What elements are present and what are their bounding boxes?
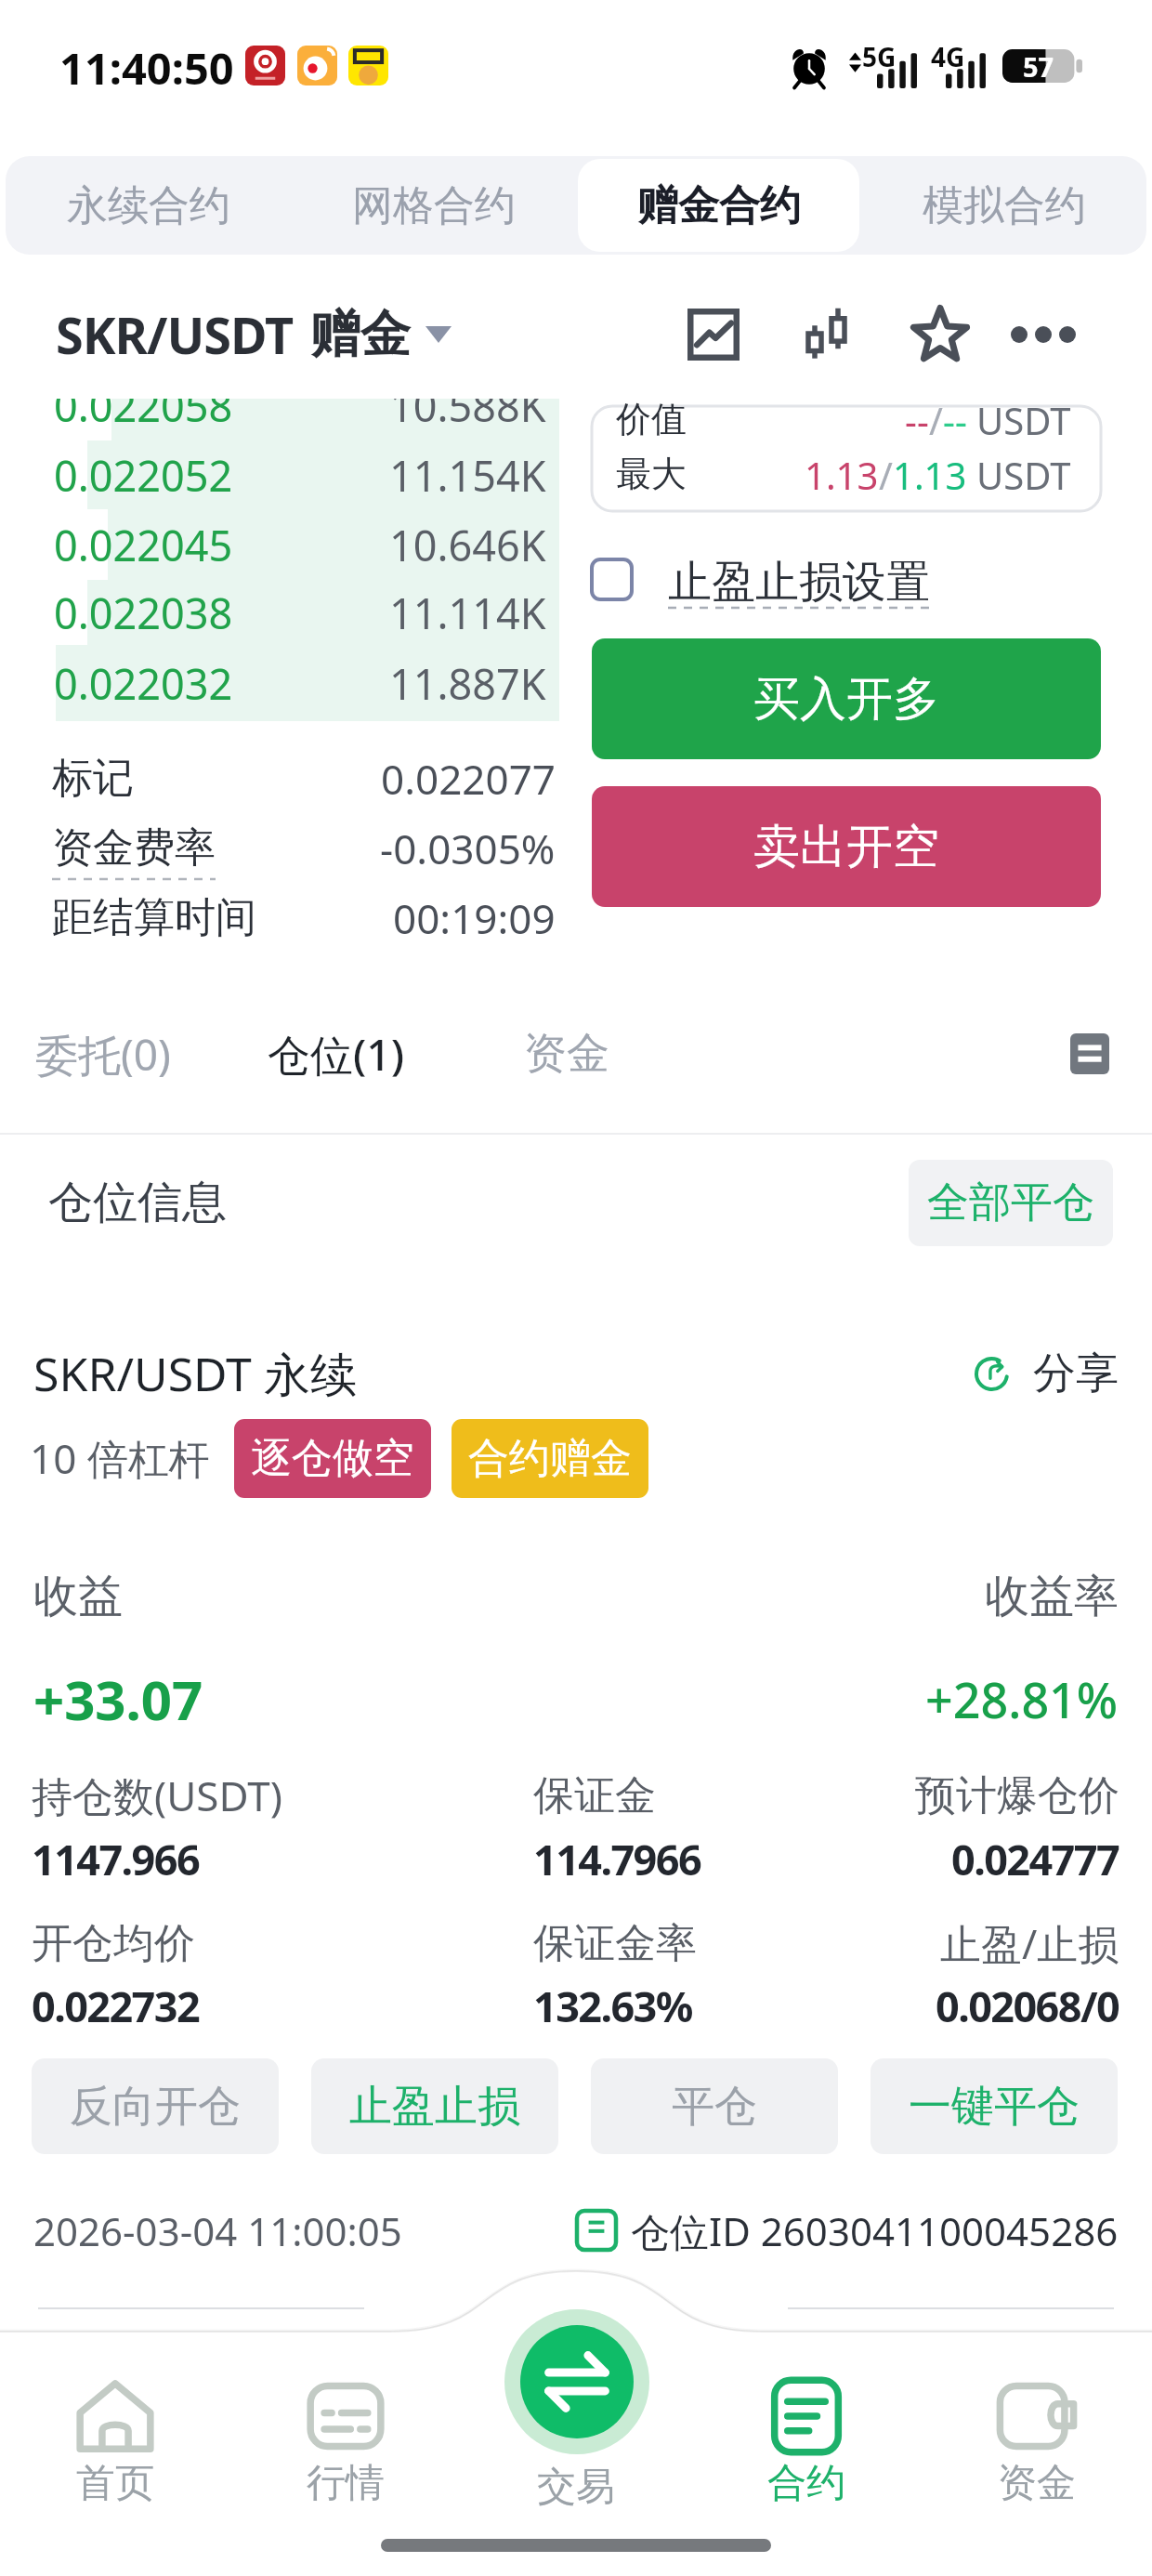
staticText: +33.07 [33, 1663, 203, 1736]
button[interactable]: 0.022038 [0, 580, 559, 645]
staticText: 10.588K [389, 399, 546, 434]
staticText: 10.646K [389, 517, 546, 573]
staticText: 资金 [998, 2459, 1076, 2508]
staticText: 5G [862, 39, 897, 74]
staticText: 最大 [616, 452, 687, 496]
button[interactable]: Trade [504, 2309, 649, 2454]
button[interactable]: 分享 [974, 1347, 1119, 1400]
button[interactable]: 止盈止损 [311, 2058, 558, 2154]
button[interactable]: 合约 [691, 2342, 922, 2528]
staticText: 分享 [1033, 1347, 1119, 1400]
button[interactable]: 委托(0) [35, 1025, 171, 1084]
staticText: 首页 [76, 2459, 154, 2508]
button[interactable]: Line chart [671, 292, 756, 377]
staticText: 一键平仓 [909, 2080, 1080, 2134]
button[interactable]: Trade [461, 2309, 691, 2523]
staticText: 标记 [52, 753, 134, 804]
button[interactable]: 资金 [524, 1027, 609, 1081]
staticText: 仓位信息 [48, 1175, 227, 1230]
staticText: 0.024777 [951, 1831, 1119, 1887]
staticText: 行情 [307, 2459, 385, 2508]
button[interactable]: SKR/USDT [56, 300, 452, 369]
staticText: 仓位ID 2603041100045286 [631, 2204, 1119, 2257]
button[interactable]: 止盈止损设置 [592, 555, 930, 603]
staticText: 开仓均价 [32, 1918, 195, 1969]
button[interactable]: 买入开多 [592, 638, 1101, 759]
staticText: 132.63% [533, 1978, 692, 2034]
button[interactable]: Add to favorites [897, 291, 983, 376]
staticText: 1147.966 [32, 1831, 200, 1887]
staticText: 1.13 [805, 450, 879, 498]
staticText: 0.022058 [54, 399, 233, 434]
button[interactable]: 资金 [922, 2342, 1152, 2528]
staticText: 平仓 [672, 2080, 757, 2134]
button[interactable]: 平仓 [591, 2058, 838, 2154]
staticText: 资金费率 [52, 822, 216, 874]
staticText: 0.022052 [54, 447, 233, 504]
staticText: -- [943, 395, 967, 443]
button[interactable]: 网格合约 [293, 159, 574, 252]
button[interactable]: 0.022032 [0, 645, 559, 721]
button[interactable]: More options [1001, 292, 1086, 377]
staticText: 11.114K [389, 585, 546, 641]
button[interactable]: 模拟合约 [863, 159, 1145, 252]
staticText: 价值 [616, 397, 687, 441]
button[interactable]: 一键平仓 [871, 2058, 1118, 2154]
button[interactable]: 赠金合约 [578, 159, 859, 252]
staticText: SKR/USDT [56, 300, 294, 369]
staticText: / [879, 450, 893, 498]
staticText: 4G [931, 39, 965, 74]
staticText: 交易 [537, 2463, 615, 2512]
button[interactable]: Candlestick chart [786, 291, 871, 376]
staticText: 永续合约 [67, 180, 230, 231]
staticText: 114.7966 [533, 1831, 701, 1887]
button[interactable]: 永续合约 [7, 159, 289, 252]
staticText: 赠金 [310, 303, 411, 366]
staticText: 网格合约 [352, 180, 516, 231]
button[interactable]: 行情 [230, 2342, 461, 2528]
staticText: 0.022732 [32, 1978, 200, 2034]
staticText: 买入开多 [753, 670, 939, 729]
staticText: 收益率 [985, 1569, 1119, 1624]
button[interactable]: 首页 [0, 2342, 230, 2528]
staticText: 00:19:09 [393, 890, 556, 946]
staticText: 10 倍杠杆 [30, 1430, 210, 1486]
staticText: 收益 [33, 1569, 123, 1624]
staticText: 止盈止损设置 [668, 555, 930, 603]
staticText: 预计爆仓价 [915, 1770, 1119, 1821]
staticText: 止盈止损 [349, 2080, 520, 2134]
button[interactable]: 0.022045 [0, 509, 559, 580]
staticText: 模拟合约 [923, 180, 1086, 231]
staticText: 1.13 [893, 450, 967, 498]
staticText: 卖出开空 [753, 818, 939, 876]
button[interactable]: 0.022052 [0, 440, 559, 509]
staticText: 0.022045 [54, 517, 233, 573]
staticText: -0.0305% [380, 821, 556, 876]
staticText: USDT [976, 395, 1071, 443]
staticText: 0.022038 [54, 585, 233, 641]
button[interactable]: 卖出开空 [592, 786, 1101, 907]
staticText: 0.022032 [54, 655, 233, 712]
staticText: 仓位(1) [268, 1025, 405, 1084]
staticText: 逐仓做空 [251, 1433, 414, 1484]
button[interactable]: 仓位(1) [268, 1025, 405, 1084]
staticText: USDT [976, 450, 1071, 498]
button[interactable]: 反向开仓 [32, 2058, 279, 2154]
staticText: 反向开仓 [70, 2080, 241, 2134]
staticText: 57 [1023, 48, 1054, 85]
staticText: 委托(0) [35, 1025, 171, 1084]
button[interactable]: Filter settings [1063, 1027, 1117, 1081]
staticText: SKR/USDT 永续 [33, 1342, 357, 1405]
button[interactable]: 全部平仓 [909, 1160, 1113, 1246]
staticText: 合约赠金 [468, 1433, 632, 1484]
staticText: 11.887K [389, 655, 546, 712]
staticText: 赠金合约 [637, 180, 801, 231]
staticText: 2026-03-04 11:00:05 [33, 2204, 402, 2257]
staticText: 全部平仓 [927, 1176, 1094, 1229]
button[interactable]: 0.022058 [0, 399, 559, 440]
staticText: 0.022077 [381, 751, 556, 807]
staticText: -- [905, 395, 929, 443]
staticText: 资金 [524, 1027, 609, 1081]
staticText: 距结算时间 [52, 892, 256, 943]
staticText: 保证金 [533, 1770, 656, 1821]
